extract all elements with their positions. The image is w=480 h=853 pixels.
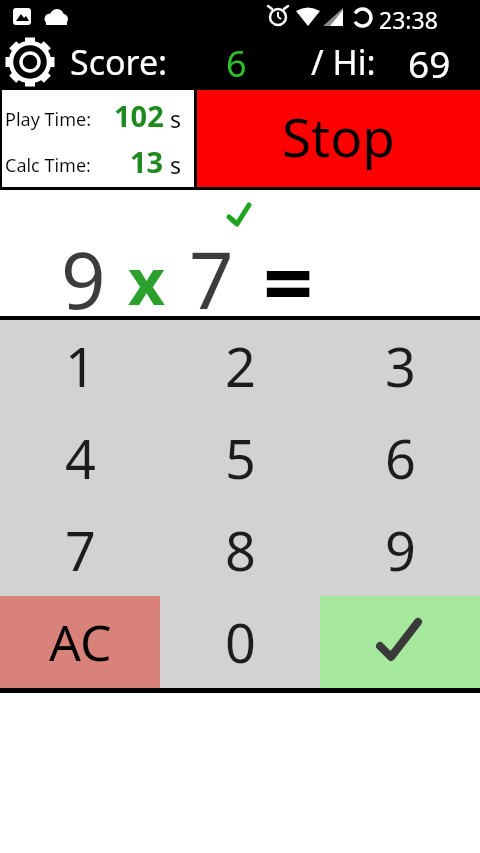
button[interactable]: 6 bbox=[320, 412, 480, 504]
staticText: 5 bbox=[225, 421, 256, 495]
staticText: Score: bbox=[70, 39, 168, 85]
staticText: 102 bbox=[114, 96, 164, 135]
button[interactable]: 4 bbox=[0, 412, 160, 504]
button[interactable]: 2 bbox=[160, 320, 320, 412]
button[interactable]: 0 bbox=[160, 596, 320, 688]
staticText: s bbox=[164, 149, 181, 180]
staticText: 2 bbox=[225, 329, 256, 403]
button[interactable]: 7 bbox=[0, 504, 160, 596]
button[interactable]: 5 bbox=[160, 412, 320, 504]
staticText: AC bbox=[49, 608, 112, 676]
staticText: 6 bbox=[385, 421, 416, 495]
staticText: 23:38 bbox=[379, 4, 438, 35]
staticText: s bbox=[164, 103, 181, 134]
button[interactable]: 3 bbox=[320, 320, 480, 412]
button[interactable]: 9 bbox=[320, 504, 480, 596]
staticText: 9 bbox=[385, 513, 416, 587]
staticText: x bbox=[128, 237, 165, 324]
staticText: 69 bbox=[408, 38, 451, 88]
button[interactable] bbox=[0, 32, 60, 90]
staticText: 1 bbox=[65, 329, 96, 403]
staticText: 7 bbox=[189, 226, 234, 332]
button[interactable]: 8 bbox=[160, 504, 320, 596]
button[interactable]: AC bbox=[0, 596, 160, 688]
staticText: 0 bbox=[225, 605, 256, 679]
button[interactable]: Stop bbox=[197, 90, 480, 187]
staticText: 7 bbox=[65, 513, 96, 587]
staticText: Play Time: bbox=[5, 107, 91, 132]
staticText: 4 bbox=[65, 421, 96, 495]
staticText: 3 bbox=[385, 329, 416, 403]
staticText: 13 bbox=[130, 142, 164, 181]
staticText: = bbox=[263, 221, 314, 341]
staticText: Stop bbox=[282, 100, 395, 172]
staticText: Calc Time: bbox=[5, 153, 91, 178]
staticText: 8 bbox=[225, 513, 256, 587]
staticText: 9 bbox=[61, 226, 106, 332]
staticText: 6 bbox=[226, 39, 247, 88]
button[interactable]: 1 bbox=[0, 320, 160, 412]
staticText: / Hi: bbox=[311, 39, 376, 85]
button[interactable] bbox=[320, 596, 480, 688]
